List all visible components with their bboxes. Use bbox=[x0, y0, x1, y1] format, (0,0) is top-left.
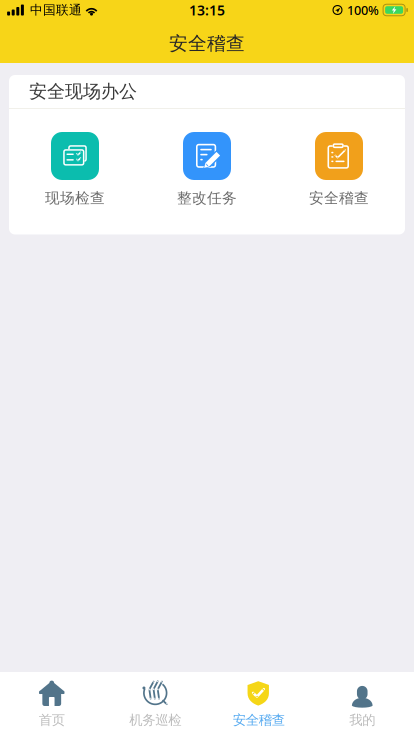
button[interactable]: 机务巡检 bbox=[103, 672, 207, 736]
staticText: 安全现场办公 bbox=[29, 80, 137, 103]
staticText: 安全稽查 bbox=[169, 32, 245, 55]
staticText: 中国联通 bbox=[30, 2, 82, 18]
button[interactable]: 首页 bbox=[0, 672, 103, 736]
staticText: 现场检查 bbox=[45, 189, 105, 207]
button[interactable]: 我的 bbox=[310, 672, 414, 736]
button[interactable]: 现场检查 bbox=[9, 132, 141, 207]
staticText: 机务巡检 bbox=[129, 712, 181, 728]
staticText: 100% bbox=[347, 1, 379, 19]
staticText: 整改任务 bbox=[177, 189, 237, 207]
staticText: 我的 bbox=[349, 712, 375, 728]
staticText: 首页 bbox=[39, 712, 65, 728]
staticText: 安全稽查 bbox=[233, 712, 285, 728]
button[interactable]: 安全稽查 bbox=[207, 672, 310, 736]
staticText: 安全稽查 bbox=[309, 189, 369, 207]
button[interactable]: 安全稽查 bbox=[273, 132, 405, 207]
button[interactable]: 整改任务 bbox=[141, 132, 273, 207]
staticText: 13:15 bbox=[189, 0, 225, 20]
